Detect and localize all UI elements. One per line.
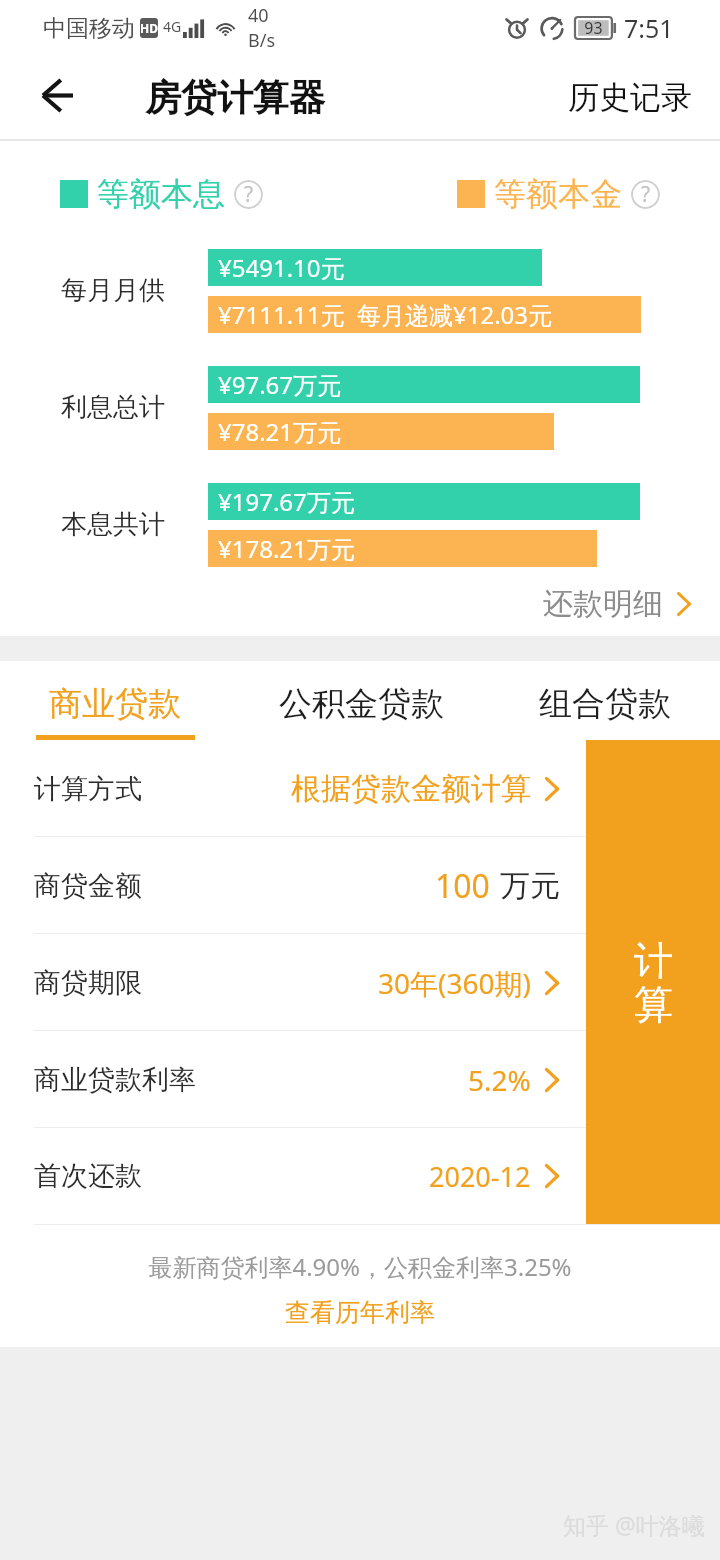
staticText: 商贷期限	[34, 966, 142, 1000]
button[interactable]: 商贷金额	[0, 837, 586, 934]
staticText: 还款明细	[543, 585, 663, 623]
staticText: 商贷金额	[34, 869, 142, 903]
staticText: 40	[248, 3, 269, 28]
staticText: 100	[435, 864, 490, 908]
staticText: ¥97.67万元	[218, 368, 342, 401]
staticText: HD	[140, 20, 158, 36]
staticText: 根据贷款金额计算	[291, 770, 531, 808]
button[interactable]: Back	[20, 61, 94, 135]
button[interactable]: 查看历年利率	[269, 1291, 451, 1334]
staticText: ?	[641, 180, 651, 209]
button[interactable]: 等额本息	[60, 174, 263, 214]
staticText: ?	[244, 180, 254, 209]
staticText: 知乎 @叶洛曦	[563, 1509, 705, 1540]
button[interactable]: 商业贷款利率	[0, 1031, 586, 1128]
staticText: 计 算	[634, 936, 673, 1029]
staticText: 历史记录	[568, 78, 692, 117]
staticText: 查看历年利率	[285, 1297, 435, 1328]
button[interactable]: 计 算	[586, 740, 720, 1224]
staticText: 万元	[500, 867, 560, 905]
staticText: ¥7111.11元 每月递减¥12.03元	[218, 298, 553, 331]
button[interactable]: 历史记录	[540, 60, 720, 135]
staticText: ¥197.67万元	[218, 485, 355, 518]
staticText: ¥178.21万元	[218, 532, 355, 565]
staticText: 最新商贷利率4.90%，公积金利率3.25%	[0, 1250, 720, 1283]
staticText: 商业贷款利率	[34, 1063, 196, 1097]
button[interactable]: 计算方式	[0, 740, 586, 837]
staticText: 商业贷款	[49, 683, 181, 725]
button[interactable]: 商业贷款	[0, 661, 240, 740]
staticText: 2020-12	[429, 1158, 531, 1195]
button[interactable]: 公积金贷款	[240, 661, 480, 740]
button[interactable]: 组合贷款	[480, 661, 720, 740]
staticText: 本息共计	[61, 508, 165, 541]
staticText: 4G	[163, 17, 182, 36]
button[interactable]: 首次还款	[0, 1128, 586, 1224]
staticText: 公积金贷款	[279, 683, 444, 725]
staticText: 组合贷款	[539, 683, 671, 725]
staticText: 计算方式	[34, 772, 142, 806]
staticText: 等额本金	[494, 174, 622, 214]
staticText: 5.2%	[468, 1061, 531, 1099]
staticText: B/s	[248, 28, 276, 53]
staticText: 7:51	[624, 11, 674, 45]
staticText: ¥5491.10元	[218, 251, 345, 284]
staticText: 利息总计	[61, 391, 165, 424]
staticText: ¥78.21万元	[218, 415, 342, 448]
staticText: 30年(360期)	[378, 964, 531, 1002]
staticText: 93	[575, 17, 612, 39]
button[interactable]: 等额本金	[457, 174, 660, 214]
staticText: 等额本息	[97, 174, 225, 214]
staticText: 首次还款	[34, 1159, 142, 1193]
staticText: 房贷计算器	[145, 75, 325, 120]
button[interactable]: 还款明细	[527, 585, 720, 635]
button[interactable]: 商贷期限	[0, 934, 586, 1031]
staticText: 每月月供	[61, 274, 165, 307]
staticText: 中国移动	[43, 14, 135, 43]
